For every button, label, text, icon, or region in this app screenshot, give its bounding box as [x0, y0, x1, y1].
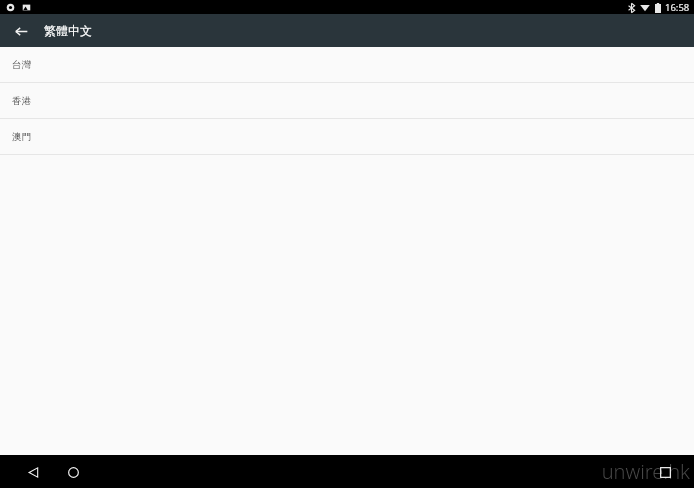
- button[interactable]: 澳門: [0, 119, 694, 154]
- staticText: 台灣: [12, 59, 31, 71]
- staticText: 香港: [12, 95, 31, 107]
- staticText: 繁體中文: [44, 23, 92, 38]
- button[interactable]: 台灣: [0, 47, 694, 82]
- button[interactable]: Back: [20, 459, 46, 485]
- staticText: 16:58: [665, 1, 690, 14]
- staticText: unwire.hk: [601, 458, 690, 485]
- button[interactable]: 香港: [0, 83, 694, 118]
- button[interactable]: Home: [60, 459, 86, 485]
- staticText: 澳門: [12, 131, 31, 143]
- button[interactable]: Recent apps: [652, 459, 678, 485]
- button[interactable]: Back: [8, 18, 34, 44]
